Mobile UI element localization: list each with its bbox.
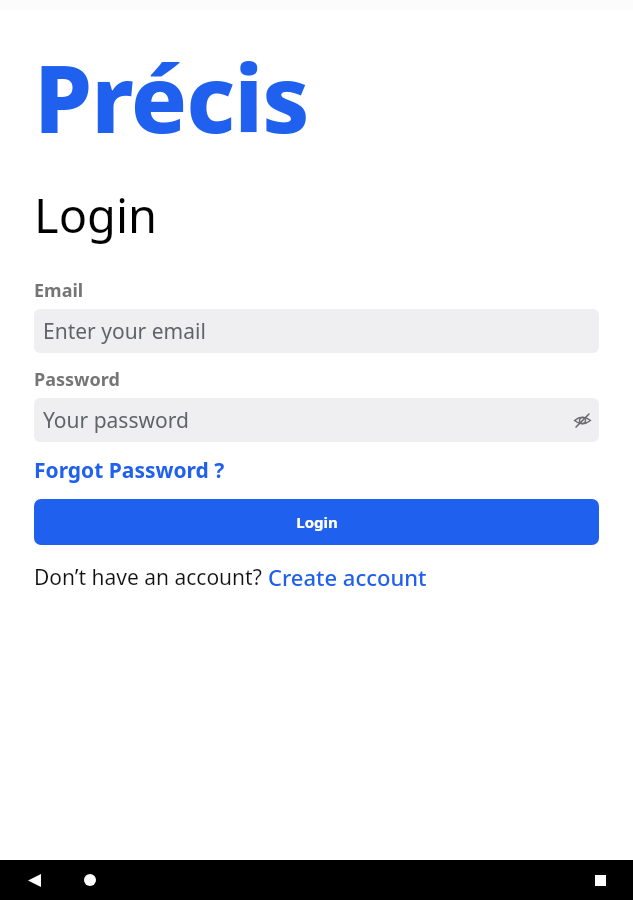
- button[interactable]: Back: [18, 864, 50, 896]
- button[interactable]: Create account: [268, 562, 427, 592]
- button[interactable]: Forgot Password ?: [34, 456, 225, 485]
- button[interactable]: Recent apps: [584, 864, 616, 896]
- staticText: Enter your email: [43, 317, 206, 346]
- button[interactable]: Show password: [565, 403, 599, 437]
- staticText: Create account: [268, 562, 427, 592]
- staticText: Forgot Password ?: [34, 456, 225, 485]
- staticText: Your password: [43, 406, 189, 435]
- button[interactable]: Login: [34, 499, 599, 545]
- staticText: Password: [34, 367, 120, 392]
- staticText: Login: [296, 512, 338, 532]
- staticText: Login: [34, 183, 158, 247]
- button[interactable]: Your password: [34, 398, 599, 442]
- button[interactable]: Enter your email: [34, 309, 599, 353]
- staticText: Email: [34, 278, 84, 303]
- staticText: Don’t have an account?: [34, 563, 268, 592]
- staticText: Précis: [34, 34, 309, 161]
- button[interactable]: Home: [74, 864, 106, 896]
